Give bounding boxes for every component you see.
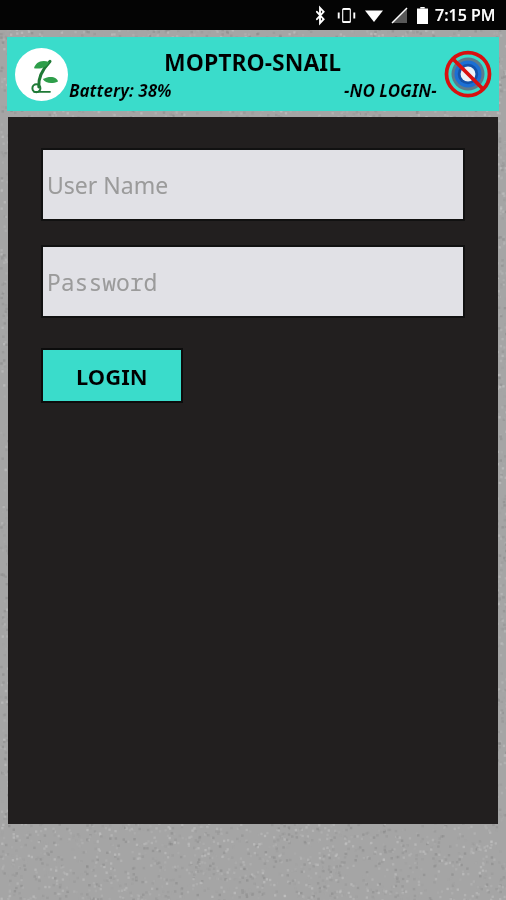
button[interactable]: User Name bbox=[43, 150, 463, 219]
button[interactable]: LOGIN bbox=[43, 350, 181, 401]
staticText: -NO LOGIN- bbox=[344, 79, 437, 102]
button[interactable]: App logo bbox=[15, 48, 68, 101]
staticText: LOGIN bbox=[76, 361, 148, 391]
staticText: Password bbox=[47, 266, 158, 297]
button[interactable]: Password bbox=[43, 247, 463, 316]
staticText: 7:15 PM bbox=[435, 4, 496, 26]
staticText: User Name bbox=[47, 169, 169, 200]
staticText: Battery: 38% bbox=[69, 79, 172, 102]
button[interactable]: Sound off bbox=[442, 48, 494, 100]
staticText: MOPTRO-SNAIL bbox=[164, 46, 342, 77]
